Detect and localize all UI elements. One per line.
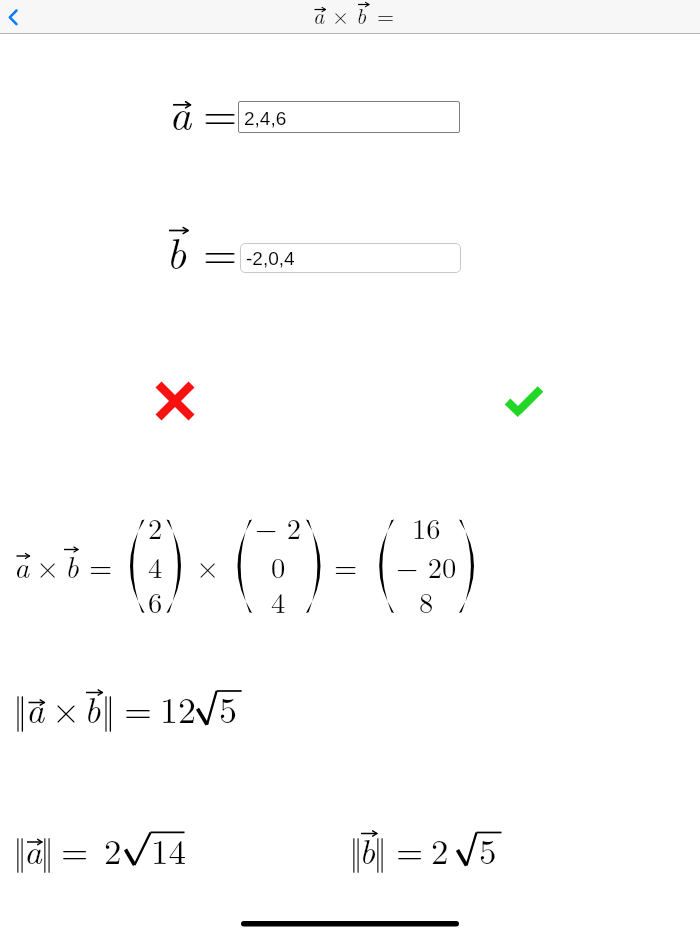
staticText: a [26,682,45,733]
staticText: 4 [271,581,286,621]
staticText: ‖ [13,682,28,733]
staticText: a [24,825,42,875]
staticText: ‖ [40,825,54,875]
button[interactable] [0,0,40,34]
staticText: 2,4,6 [244,108,287,129]
button[interactable] [502,379,546,423]
staticText: = [124,682,153,733]
staticText: 14 [151,825,187,875]
staticText: 0 [271,546,286,586]
staticText: b [356,0,367,30]
staticText: -2,0,4 [246,248,295,269]
staticText: 2 [148,507,163,547]
staticText: × [196,544,220,587]
staticText: − 20 [396,546,457,586]
staticText: a [169,80,192,142]
staticText: = [89,544,113,587]
staticText: a [14,544,30,586]
staticText: b [166,219,187,281]
staticText: 4 [148,546,163,586]
button[interactable] [238,101,460,133]
staticText: b [84,682,101,733]
staticText: ‖ [101,682,116,733]
staticText: ‖ [373,825,387,875]
staticText: 6 [148,581,163,621]
staticText: × [52,682,81,733]
button[interactable] [153,379,197,423]
staticText: × [332,0,350,30]
staticText: 8 [419,581,434,621]
staticText: 5 [219,682,237,733]
staticText: = [377,0,395,30]
staticText: = [203,80,238,142]
staticText: 12 [160,682,196,733]
button[interactable] [240,243,461,273]
staticText: 5 [479,825,497,875]
staticText: ‖ [349,825,363,875]
staticText: × [36,544,60,587]
staticText: = [334,544,358,587]
staticText: = [203,219,238,281]
staticText: a [313,0,325,30]
staticText: b [359,825,376,875]
staticText: 2 [431,825,449,875]
staticText: 2 [104,825,122,875]
staticText: b [65,544,79,586]
staticText: 16 [412,507,441,547]
staticText: = [396,825,424,875]
staticText: = [61,825,89,875]
staticText: − 2 [255,507,301,547]
staticText: ‖ [13,825,27,875]
